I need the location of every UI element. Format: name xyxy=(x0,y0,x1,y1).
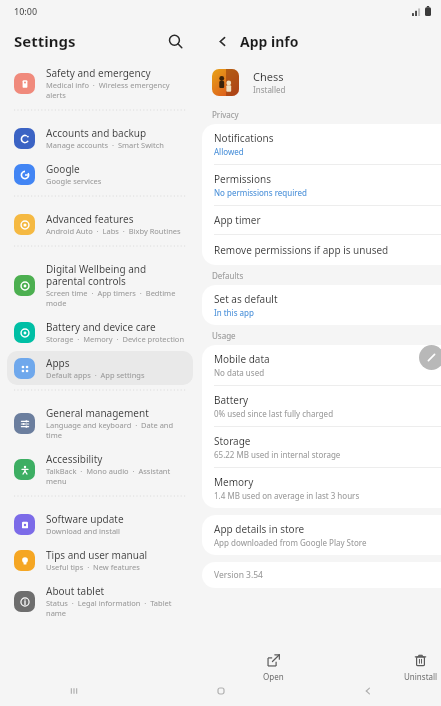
button[interactable]: About tablet xyxy=(7,579,193,623)
staticText: Accounts and backup xyxy=(46,126,147,140)
staticText: No data used xyxy=(214,367,265,378)
staticText: Tips and user manual xyxy=(46,548,148,562)
staticText: In this app xyxy=(214,307,254,318)
staticText: Useful tips · New features xyxy=(46,562,140,572)
staticText: Set as default xyxy=(214,292,278,306)
staticText: App timer xyxy=(214,213,261,227)
staticText: Safety and emergency xyxy=(46,66,151,80)
staticText: Open xyxy=(263,671,284,682)
staticText: Download and install xyxy=(46,526,120,536)
staticText: Mobile data xyxy=(214,352,270,366)
button[interactable]: Mobile data xyxy=(202,345,441,385)
button[interactable]: recents xyxy=(0,676,147,706)
button[interactable]: Back xyxy=(210,29,234,53)
button[interactable]: Uninstall xyxy=(347,648,441,688)
staticText: Battery and device care xyxy=(46,320,156,334)
staticText: Chess xyxy=(253,69,284,84)
button[interactable]: back xyxy=(294,676,441,706)
staticText: Language and keyboard · Date and time xyxy=(46,420,186,440)
staticText: 1.4 MB used on average in last 3 hours xyxy=(214,490,360,501)
staticText: Software update xyxy=(46,512,124,526)
staticText: Usage xyxy=(212,330,236,341)
staticText: App details in store xyxy=(214,522,305,536)
staticText: 65.22 MB used in internal storage xyxy=(214,449,341,460)
staticText: Storage · Memory · Device protection xyxy=(46,334,185,344)
button[interactable]: Search xyxy=(162,28,188,54)
button[interactable]: Google xyxy=(7,157,193,191)
button[interactable]: Apps xyxy=(7,351,193,385)
staticText: Memory xyxy=(214,475,254,489)
staticText: Android Auto · Labs · Bixby Routines xyxy=(46,226,181,236)
staticText: App downloaded from Google Play Store xyxy=(214,537,367,548)
staticText: Battery xyxy=(214,393,249,407)
staticText: Default apps · App settings xyxy=(46,370,145,380)
button[interactable]: home xyxy=(147,676,294,706)
button[interactable]: Tips and user manual xyxy=(7,543,193,577)
button[interactable]: Set as default xyxy=(202,285,441,325)
staticText: Installed xyxy=(253,84,286,95)
staticText: About tablet xyxy=(46,584,105,598)
staticText: Google xyxy=(46,162,80,176)
staticText: App info xyxy=(240,32,299,51)
staticText: Uninstall xyxy=(404,671,438,682)
staticText: Medical info · Wireless emergency alerts xyxy=(46,80,186,100)
button[interactable]: Battery and device care xyxy=(7,315,193,349)
staticText: Settings xyxy=(14,31,76,51)
staticText: Remove permissions if app is unused xyxy=(214,243,441,257)
staticText: Apps xyxy=(46,356,70,370)
button[interactable]: Accessibility xyxy=(7,447,193,491)
button[interactable]: Notifications xyxy=(202,124,441,164)
button[interactable]: Advanced features xyxy=(7,207,193,241)
staticText: Permissions xyxy=(214,172,271,186)
button[interactable]: App timer xyxy=(202,206,441,234)
staticText: 0% used since last fully charged xyxy=(214,408,334,419)
button[interactable]: Permissions xyxy=(202,165,441,205)
staticText: 10:00 xyxy=(14,5,38,17)
staticText: Screen time · App timers · Bedtime mode xyxy=(46,288,176,308)
staticText: Manage accounts · Smart Switch xyxy=(46,140,164,150)
staticText: Notifications xyxy=(214,131,274,145)
button[interactable]: App details in store xyxy=(202,515,441,555)
staticText: Status · Legal information · Tablet name xyxy=(46,598,186,618)
button[interactable]: Remove permissions if app is unused xyxy=(202,235,441,265)
staticText: Privacy xyxy=(212,109,239,120)
staticText: Google services xyxy=(46,176,102,186)
staticText: Storage xyxy=(214,434,251,448)
staticText: Advanced features xyxy=(46,212,134,226)
button[interactable]: Chess xyxy=(212,60,441,104)
button[interactable]: Edit xyxy=(419,345,441,370)
button[interactable]: Accounts and backup xyxy=(7,121,193,155)
button[interactable]: Storage xyxy=(202,427,441,467)
button[interactable]: Open xyxy=(200,648,347,688)
button[interactable]: Digital Wellbeing and parental controls xyxy=(7,257,193,313)
button[interactable]: General management xyxy=(7,401,193,445)
staticText: General management xyxy=(46,406,149,420)
staticText: Defaults xyxy=(212,270,244,281)
staticText: No permissions required xyxy=(214,187,307,198)
button[interactable]: Battery xyxy=(202,386,441,426)
staticText: Digital Wellbeing and parental controls xyxy=(46,262,186,288)
button[interactable]: Software update xyxy=(7,507,193,541)
staticText: Version 3.54 xyxy=(214,569,263,581)
button[interactable]: Memory xyxy=(202,468,441,508)
button[interactable]: Safety and emergency xyxy=(7,61,193,105)
staticText: Accessibility xyxy=(46,452,103,466)
staticText: TalkBack · Mono audio · Assistant menu xyxy=(46,466,186,486)
staticText: Allowed xyxy=(214,146,244,157)
